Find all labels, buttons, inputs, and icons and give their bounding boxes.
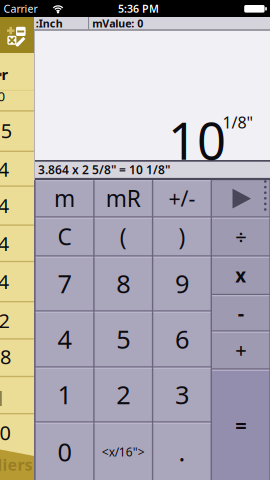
button[interactable]: Edit tape <box>0 17 34 53</box>
staticText: ( <box>120 221 127 251</box>
staticText: 4 <box>0 156 9 182</box>
staticText: 0 <box>0 87 5 105</box>
staticText: 10 <box>168 106 226 174</box>
staticText: Carrier <box>3 1 37 16</box>
staticText: 3.864 x 2 5/8" = 10 1/8" <box>38 161 170 177</box>
staticText: x <box>235 263 246 288</box>
staticText: 8 <box>116 267 130 300</box>
staticText: ÷ <box>235 223 246 250</box>
button[interactable]: 0 <box>36 423 93 480</box>
staticText: 6 <box>175 322 189 356</box>
staticText: = <box>235 412 246 439</box>
button[interactable]: C <box>36 218 93 255</box>
staticText: 3 <box>175 378 189 411</box>
button[interactable]: 6 <box>153 312 211 366</box>
button[interactable]: 1 <box>36 368 93 421</box>
staticText: 2 <box>0 307 9 334</box>
staticText: 4 <box>0 192 9 219</box>
button[interactable]: - <box>212 295 269 330</box>
staticText: mValue: 0 <box>92 16 143 30</box>
staticText: 8 <box>0 343 11 370</box>
button[interactable]: = <box>212 370 269 480</box>
staticText: 5 <box>1 117 12 144</box>
staticText: 9 <box>175 267 189 300</box>
button[interactable]: 4 <box>36 312 93 366</box>
button[interactable]: + <box>212 332 269 368</box>
staticText: . <box>178 435 185 468</box>
staticText: mR <box>106 183 141 213</box>
staticText: C <box>57 221 71 251</box>
staticText: +/- <box>168 184 195 212</box>
button[interactable]: 3 <box>153 368 211 421</box>
staticText: 4 <box>0 230 9 257</box>
button[interactable]: 9 <box>153 257 211 310</box>
staticText: 0 <box>57 435 71 468</box>
button[interactable]: ÷ <box>212 218 269 255</box>
button[interactable]: m <box>36 180 93 216</box>
staticText: 1 <box>57 378 71 411</box>
staticText: - <box>238 299 244 326</box>
button[interactable]: 8 <box>95 257 152 310</box>
button[interactable]: 7 <box>36 257 93 310</box>
staticText: r <box>1 65 8 84</box>
button[interactable]: x <box>212 257 269 294</box>
staticText: liers <box>0 454 32 475</box>
staticText: + <box>235 337 246 363</box>
button[interactable]: Run <box>212 180 269 216</box>
staticText: 5:36 PM <box>118 1 159 16</box>
staticText: 4 <box>57 322 71 356</box>
staticText: 2 <box>116 378 130 411</box>
staticText: 0 <box>0 419 10 446</box>
button[interactable]: ( <box>95 218 152 255</box>
staticText: ) <box>178 221 185 251</box>
staticText: 4 <box>0 268 9 295</box>
staticText: 7 <box>57 267 71 300</box>
button[interactable]: mR <box>95 180 152 216</box>
staticText: m <box>54 183 75 213</box>
button[interactable]: 2 <box>95 368 152 421</box>
staticText: <x/16"> <box>102 444 145 460</box>
button[interactable]: ) <box>153 218 211 255</box>
button[interactable]: <x/16"> <box>95 423 152 480</box>
button[interactable]: . <box>153 423 211 480</box>
button[interactable]: 5 <box>95 312 152 366</box>
staticText: :Inch <box>36 16 63 30</box>
staticText: 5 <box>116 322 130 356</box>
button[interactable]: +/- <box>153 180 211 216</box>
staticText: 1/8" <box>222 112 253 133</box>
